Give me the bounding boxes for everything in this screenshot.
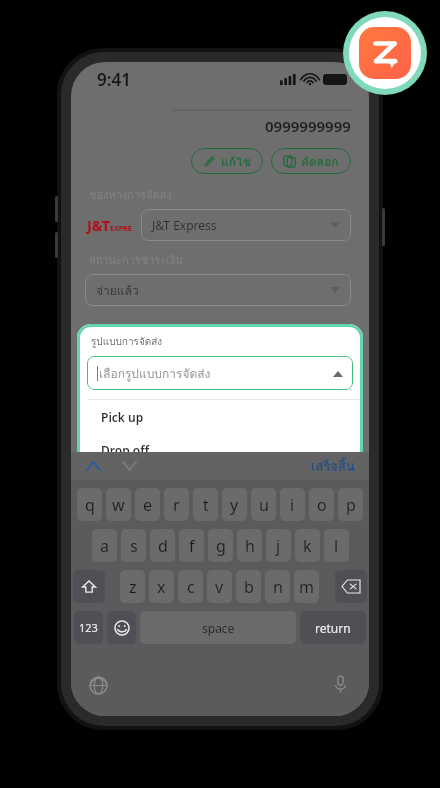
button[interactable]: App logo: [359, 27, 411, 79]
staticText: x: [157, 576, 166, 598]
button[interactable]: u: [251, 488, 276, 521]
staticText: แก้ไข: [221, 152, 251, 171]
staticText: q: [85, 494, 95, 516]
button[interactable]: Delete: [335, 570, 367, 603]
button[interactable]: j: [266, 529, 291, 562]
button[interactable]: n: [265, 570, 290, 603]
other: Emoji: [114, 620, 130, 636]
button[interactable]: y: [222, 488, 247, 521]
staticText: 0999999999: [265, 116, 351, 136]
button[interactable]: Drop off: [77, 433, 363, 466]
staticText: t: [203, 494, 209, 516]
button[interactable]: Next field: [119, 456, 139, 476]
staticText: g: [216, 535, 226, 557]
staticText: j: [276, 535, 281, 557]
button[interactable]: i: [280, 488, 305, 521]
button[interactable]: Dictate: [334, 675, 347, 694]
button[interactable]: q: [77, 488, 102, 521]
button[interactable]: h: [237, 529, 262, 562]
button[interactable]: x: [149, 570, 174, 603]
button[interactable]: จ่ายแล้ว: [85, 274, 351, 306]
staticText: n: [273, 576, 283, 598]
button[interactable]: p: [338, 488, 363, 521]
staticText: b: [244, 576, 254, 598]
staticText: Drop off: [101, 442, 150, 458]
button[interactable]: f: [179, 529, 204, 562]
staticText: e: [143, 494, 153, 516]
button[interactable]: t: [193, 488, 218, 521]
staticText: เสร็จสิ้น: [311, 456, 355, 477]
button[interactable]: d: [150, 529, 175, 562]
staticText: r: [173, 494, 180, 516]
staticText: เลือกรูปแบบการจัดส่ง: [99, 364, 211, 383]
staticText: z: [129, 576, 137, 598]
button[interactable]: แก้ไข: [191, 148, 263, 174]
staticText: v: [215, 576, 224, 598]
staticText: สถานะการชำระเงิน: [89, 251, 183, 268]
button[interactable]: J&T Express: [141, 209, 351, 241]
staticText: 9:41: [97, 68, 131, 91]
button[interactable]: Previous field: [83, 456, 103, 476]
staticText: m: [299, 576, 314, 598]
staticText: i: [290, 494, 295, 516]
staticText: ช่องทางการจัดส่ง: [89, 186, 172, 203]
staticText: จ่ายแล้ว: [96, 281, 139, 300]
staticText: EXPRE: [110, 224, 132, 234]
staticText: c: [187, 576, 195, 598]
staticText: d: [158, 535, 168, 557]
button[interactable]: Pick up: [77, 400, 363, 433]
staticText: คัดลอก: [301, 152, 339, 171]
staticText: a: [100, 535, 109, 557]
button[interactable]: b: [236, 570, 261, 603]
staticText: f: [189, 535, 195, 557]
button[interactable]: a: [92, 529, 117, 562]
button[interactable]: l: [324, 529, 349, 562]
staticText: u: [259, 494, 269, 516]
button[interactable]: space: [140, 611, 296, 644]
button[interactable]: z: [120, 570, 145, 603]
staticText: k: [303, 535, 312, 557]
button[interactable]: e: [135, 488, 160, 521]
staticText: p: [346, 494, 356, 516]
button[interactable]: Emoji: [107, 611, 136, 644]
button[interactable]: 123: [74, 611, 103, 644]
button[interactable]: v: [207, 570, 232, 603]
staticText: 123: [79, 620, 98, 635]
staticText: รูปแบบการจัดส่ง: [91, 334, 163, 350]
staticText: y: [230, 494, 239, 516]
staticText: J&T Express: [152, 217, 217, 233]
staticText: s: [130, 535, 138, 557]
button[interactable]: m: [294, 570, 319, 603]
staticText: h: [245, 535, 255, 557]
staticText: w: [112, 494, 125, 516]
button[interactable]: k: [295, 529, 320, 562]
staticText: space: [202, 620, 235, 636]
staticText: return: [315, 620, 351, 636]
other: Delete: [342, 580, 360, 593]
button[interactable]: c: [178, 570, 203, 603]
button[interactable]: o: [309, 488, 334, 521]
staticText: o: [317, 494, 327, 516]
button[interactable]: return: [300, 611, 366, 644]
button[interactable]: คัดลอก: [271, 148, 351, 174]
button[interactable]: Change keyboard language: [89, 676, 108, 695]
button[interactable]: เลือกรูปแบบการจัดส่ง: [87, 356, 353, 390]
staticText: Pick up: [101, 409, 144, 425]
button[interactable]: s: [121, 529, 146, 562]
button[interactable]: w: [106, 488, 131, 521]
other: Shift: [81, 579, 97, 595]
button[interactable]: r: [164, 488, 189, 521]
button[interactable]: Shift: [73, 570, 105, 603]
staticText: J&T: [87, 216, 110, 235]
staticText: l: [334, 535, 339, 557]
button[interactable]: g: [208, 529, 233, 562]
